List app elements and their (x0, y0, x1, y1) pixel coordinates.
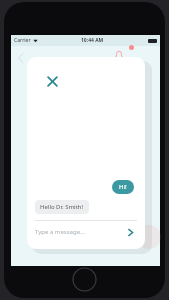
button[interactable]: Send (123, 225, 137, 239)
staticText: Hello Dr. Smith! (40, 203, 84, 211)
button[interactable]: Close (42, 71, 62, 91)
button[interactable]: Hi! (112, 180, 134, 194)
staticText: Carrier (14, 37, 31, 44)
staticText: Type a message... (35, 228, 123, 236)
button[interactable]: Notifications (110, 46, 128, 64)
button[interactable]: Hello Dr. Smith! (35, 200, 89, 214)
button[interactable]: Back (13, 50, 29, 66)
staticText: 10:44 AM (81, 37, 104, 44)
staticText: Hi! (119, 183, 127, 191)
